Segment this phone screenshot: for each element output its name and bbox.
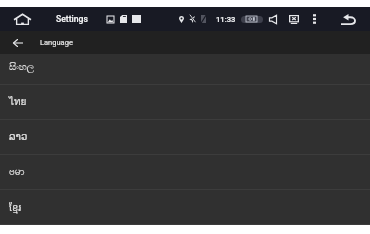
staticText: Settings xyxy=(56,14,88,24)
staticText: Language xyxy=(40,38,73,47)
button[interactable]: Navigate up xyxy=(9,31,27,54)
button[interactable]: ဗမာ xyxy=(0,155,370,189)
staticText: ខ្មែរ xyxy=(9,200,22,214)
button[interactable]: ไทย xyxy=(0,85,370,119)
button[interactable]: ខ្មែរ xyxy=(0,190,370,224)
staticText: සිංහල xyxy=(9,62,35,72)
staticText: ລາວ xyxy=(9,131,28,143)
staticText: ไทย xyxy=(9,94,27,110)
staticText: ဗမာ xyxy=(9,165,25,180)
button[interactable]: සිංහල xyxy=(0,54,370,84)
button[interactable]: ລາວ xyxy=(0,120,370,154)
button[interactable]: Settings xyxy=(56,7,88,31)
button[interactable]: More options xyxy=(309,7,320,31)
staticText: 11:33 xyxy=(216,15,236,24)
button[interactable]: Back xyxy=(337,7,360,31)
button[interactable]: Home xyxy=(10,7,35,31)
